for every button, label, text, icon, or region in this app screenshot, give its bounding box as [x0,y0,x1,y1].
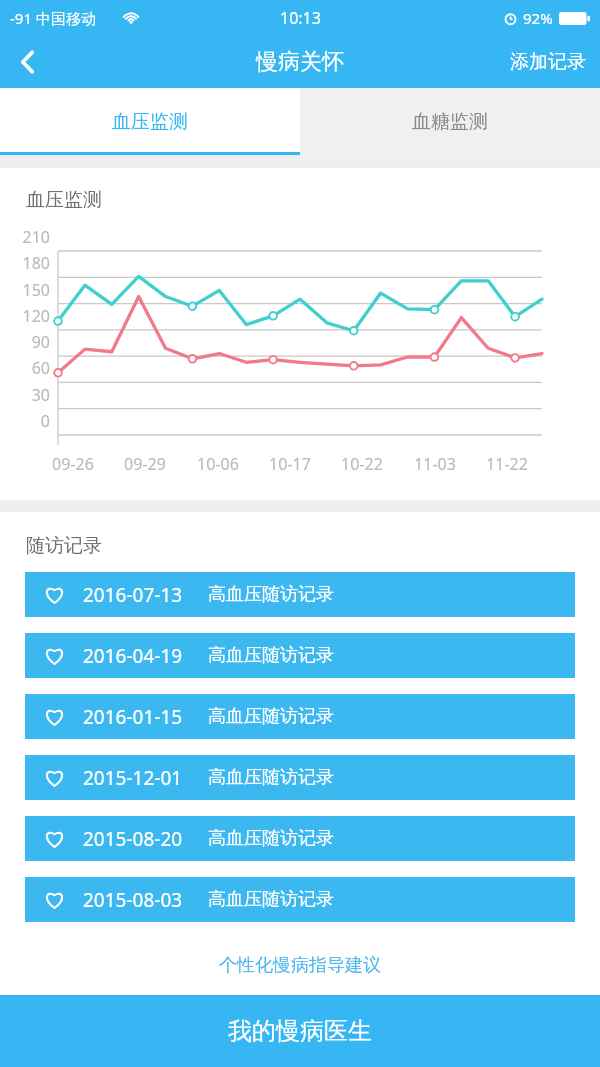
staticText: 血糖监测 [412,110,488,134]
button[interactable]: 血糖监测 [300,88,600,155]
staticText: 11-03 [400,453,470,475]
staticText: 09-26 [38,453,108,475]
staticText: 高血压随访记录 [208,766,334,789]
staticText: -91 中国移动 [10,8,96,28]
staticText: 2015-12-01 [83,765,183,791]
button[interactable]: 2015-08-20 [25,816,575,861]
button[interactable]: 血压监测 [0,88,300,155]
staticText: 个性化慢病指导建议 [219,954,381,977]
staticText: 30 [10,384,50,406]
staticText: 10-22 [327,453,397,475]
button[interactable]: 2015-08-03 [25,877,575,922]
staticText: 90 [10,331,50,353]
staticText: 高血压随访记录 [208,583,334,606]
staticText: 09-29 [110,453,180,475]
button[interactable]: 我的慢病医生 [0,995,600,1067]
staticText: 血压监测 [112,110,188,134]
button[interactable]: 2015-12-01 [25,755,575,800]
staticText: 0 [10,410,50,432]
staticText: 11-22 [472,453,542,475]
staticText: 92% [523,8,553,28]
staticText: 150 [10,279,50,301]
staticText: 120 [10,305,50,327]
staticText: 随访记录 [26,534,102,558]
staticText: 2016-07-13 [83,582,183,608]
staticText: 2016-01-15 [83,704,183,730]
staticText: 高血压随访记录 [208,705,334,728]
button[interactable]: Back [0,36,56,88]
staticText: 2015-08-03 [83,887,183,913]
staticText: 10-17 [255,453,325,475]
button[interactable]: 添加记录 [496,39,600,85]
button[interactable]: 个性化慢病指导建议 [207,950,393,981]
staticText: 210 [10,226,50,248]
staticText: 180 [10,252,50,274]
staticText: 60 [10,357,50,379]
staticText: 高血压随访记录 [208,888,334,911]
staticText: 血压监测 [26,188,102,212]
button[interactable]: 2016-07-13 [25,572,575,617]
staticText: 高血压随访记录 [208,644,334,667]
staticText: 高血压随访记录 [208,827,334,850]
staticText: 我的慢病医生 [228,1016,372,1046]
staticText: 10-06 [183,453,253,475]
button[interactable]: 2016-04-19 [25,633,575,678]
staticText: 添加记录 [510,50,586,74]
staticText: 慢病关怀 [256,48,344,76]
staticText: 2016-04-19 [83,643,183,669]
staticText: 10:13 [280,7,321,29]
staticText: 2015-08-20 [83,826,183,852]
button[interactable]: 2016-01-15 [25,694,575,739]
